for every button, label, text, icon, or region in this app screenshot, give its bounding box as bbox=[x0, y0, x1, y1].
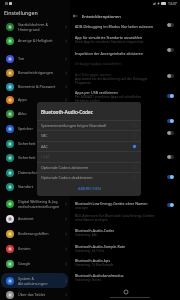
staticText: Datenschutz bbox=[18, 170, 40, 175]
staticText: Standort bbox=[18, 184, 34, 189]
staticText: Bluetooth-Audiokanalmodus bbox=[75, 273, 124, 278]
button[interactable]: Bluetooth-Audiokanalmodus bbox=[70, 273, 180, 285]
staticText: Grafiktreiber-Einstellungen bbox=[75, 164, 121, 169]
staticText: Benachrichtigungen bbox=[18, 70, 54, 75]
button[interactable]: USB-Konfiguration bbox=[70, 153, 180, 163]
button[interactable]: Apps bbox=[1, 93, 68, 106]
button[interactable]: Auf Debugger warten bbox=[167, 74, 174, 78]
button[interactable]: Deaktivieren absolute Lautstärke bbox=[167, 175, 174, 179]
staticText: Deaktivieren absolute Lautstärke bbox=[75, 175, 131, 180]
button[interactable]: App für simulierte Standorte auswählen bbox=[70, 35, 180, 45]
button[interactable]: ADB-Debugging im Modus Nur laden zulasse… bbox=[167, 23, 174, 27]
button[interactable]: Sicherheit bbox=[1, 137, 68, 150]
staticText: Auf Debugger warten bbox=[75, 72, 112, 77]
button[interactable]: Google bbox=[1, 257, 68, 270]
staticText: 13:37 bbox=[168, 1, 177, 6]
staticText: Optionale Codecs aktivieren bbox=[41, 165, 125, 170]
button[interactable]: AAC bbox=[37, 141, 141, 151]
staticText: Inspektion der Anzeigeinhalte aktivieren bbox=[75, 51, 144, 56]
button[interactable]: Bluetooth-MAP-Version bbox=[70, 142, 180, 152]
button[interactable]: Über das Tablet bbox=[1, 288, 68, 300]
staticText: Bluetooth-Audio-Codec bbox=[75, 228, 115, 233]
button[interactable]: Datenschutz bbox=[1, 166, 68, 179]
button[interactable]: Assistent bbox=[1, 212, 68, 225]
staticText: Programm bbox=[75, 81, 91, 85]
button[interactable]: Grafiktreiber-Einstellungen bbox=[70, 164, 180, 174]
button[interactable]: Inspektion der Anzeigeinhalte aktivieren bbox=[167, 48, 174, 52]
staticText: Hintergrund bbox=[18, 27, 40, 32]
staticText: Apps bbox=[18, 97, 27, 102]
button[interactable]: Inspektion der Anzeigeinhalte aktivieren bbox=[70, 51, 180, 61]
button[interactable]: Ton bbox=[1, 52, 68, 65]
staticText: Assistent bbox=[18, 216, 34, 221]
button[interactable]: Optionale Codecs deaktivieren bbox=[37, 172, 141, 182]
button[interactable]: Sicherheit bbox=[1, 151, 68, 164]
button[interactable]: Logger-Puffergrößen bbox=[167, 131, 174, 135]
staticText: Ton bbox=[18, 56, 25, 61]
button[interactable]: Auf Debugger warten bbox=[70, 72, 180, 86]
staticText: Bluetooth-Audio-Sample-Rate bbox=[75, 244, 126, 249]
button[interactable]: SBC bbox=[37, 130, 141, 140]
staticText: Verhalten prüfen bbox=[75, 99, 100, 103]
staticText: Sicherheit bbox=[18, 155, 36, 160]
button[interactable]: Akku bbox=[1, 107, 68, 120]
button[interactable]: Digital Wellbeing & Jug bbox=[1, 196, 68, 211]
button[interactable]: Anzeige & Helligkeit bbox=[1, 34, 68, 47]
button[interactable]: Standort bbox=[1, 180, 68, 193]
staticText: Logger-Puffergrößen bbox=[75, 119, 111, 124]
button[interactable]: Bluetooth-AVRCP-Version bbox=[70, 131, 180, 141]
button[interactable]: Apps per USB verifizieren bbox=[70, 90, 180, 104]
button[interactable]: Startbildschirm & bbox=[1, 20, 68, 34]
staticText: Speicher bbox=[18, 126, 33, 131]
staticText: Anzeige & Helligkeit bbox=[18, 38, 53, 43]
button[interactable]: Bluetooth Low Energy-Geräte ohne Namen a… bbox=[167, 203, 174, 207]
staticText: Apps per USB verifizieren bbox=[75, 90, 118, 95]
button[interactable]: Deaktivieren absolute Lautstärke bbox=[70, 175, 180, 185]
button[interactable]: BLE-Adressen für Bluetooth Low Energy-Ge… bbox=[70, 213, 180, 223]
staticText: Per ADB/ADT installierte Apps auf schädl… bbox=[75, 95, 142, 99]
button[interactable]: System & bbox=[1, 273, 68, 288]
button[interactable]: ADB-Debugging im Modus Nur laden zulasse… bbox=[70, 24, 180, 34]
staticText: Optionale Codecs deaktivieren bbox=[41, 175, 125, 180]
button[interactable]: Speicher bbox=[1, 122, 68, 135]
button[interactable]: Private DNS bbox=[70, 186, 180, 196]
button[interactable]: Bedienungshilfen bbox=[1, 227, 68, 240]
button[interactable]: USB-Konfiguration bbox=[167, 155, 174, 159]
staticText: Bedienungshilfen bbox=[18, 231, 49, 236]
staticText: Streaming: 16 Bits/Sample bbox=[75, 263, 114, 267]
staticText: Digital Wellbeing & Jug bbox=[18, 199, 58, 204]
button[interactable]: Logger-Puffergrößen bbox=[70, 119, 180, 129]
button[interactable]: Bluetooth-Audio-bps bbox=[70, 258, 180, 270]
button[interactable]: Konten bbox=[1, 242, 68, 255]
button[interactable]: Drahtloses Debugging bbox=[167, 119, 174, 123]
staticText: Akku bbox=[18, 111, 27, 116]
button[interactable]: Zurück bbox=[71, 12, 79, 20]
button[interactable]: LDAC bbox=[37, 151, 141, 161]
staticText: Über das Tablet bbox=[18, 292, 46, 297]
button[interactable]: Bluetooth-Audio-Sample-Rate bbox=[70, 244, 180, 256]
button[interactable]: Bluetooth Low Energy-Geräte ohne Namen bbox=[70, 201, 180, 213]
staticText: Standard bbox=[75, 169, 89, 173]
button[interactable]: Apps per USB verifizieren bbox=[167, 94, 174, 98]
button[interactable]: Biometrie & Passwort bbox=[1, 80, 68, 93]
button[interactable]: Debugging-App auswählen bbox=[70, 61, 180, 71]
button[interactable]: Systemeinstellungen folgen (Standard) bbox=[37, 120, 141, 130]
staticText: Streaming: AAC bbox=[75, 233, 98, 237]
staticText: ABBRECHEN bbox=[78, 186, 101, 191]
staticText: Debugging-App auswählen bbox=[75, 61, 121, 66]
staticText: App wartet vor der Ausführung auf den De… bbox=[75, 77, 148, 81]
button[interactable]: Bluetooth-Audio-Codec bbox=[70, 228, 180, 240]
button[interactable]: ABBRECHEN bbox=[76, 185, 102, 192]
button[interactable]: Benachrichtigungen bbox=[1, 66, 68, 79]
staticText: ADB-Debugging im Modus Nur laden zulasse… bbox=[75, 24, 154, 29]
button[interactable]: Startbildschirm bbox=[122, 288, 130, 296]
staticText: anzeigen bbox=[75, 206, 89, 210]
button[interactable]: Optionale Codecs aktivieren bbox=[37, 162, 141, 172]
staticText: Entwickleroptionen bbox=[82, 14, 121, 20]
button[interactable]: Drahtloses Debugging bbox=[70, 108, 180, 118]
